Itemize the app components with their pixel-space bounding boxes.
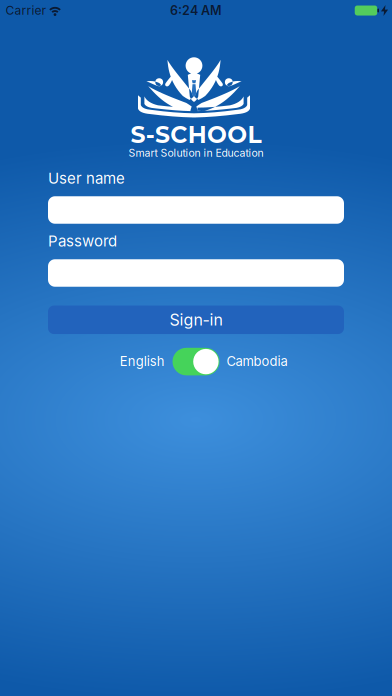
staticText: English xyxy=(120,353,165,369)
staticText: Cambodia xyxy=(226,353,287,369)
staticText: User name xyxy=(48,169,125,187)
button[interactable]: Language xyxy=(172,348,219,375)
button[interactable]: User name xyxy=(48,196,344,224)
staticText: S-SCHOOL xyxy=(130,120,262,149)
staticText: Smart Solution in Education xyxy=(128,147,263,159)
button[interactable]: Sign-in xyxy=(48,306,344,334)
button[interactable]: Password xyxy=(48,259,344,287)
staticText: Carrier xyxy=(5,3,46,18)
staticText: Password xyxy=(48,232,117,250)
staticText: 6:24 AM xyxy=(170,3,222,18)
staticText: Sign-in xyxy=(169,310,222,329)
